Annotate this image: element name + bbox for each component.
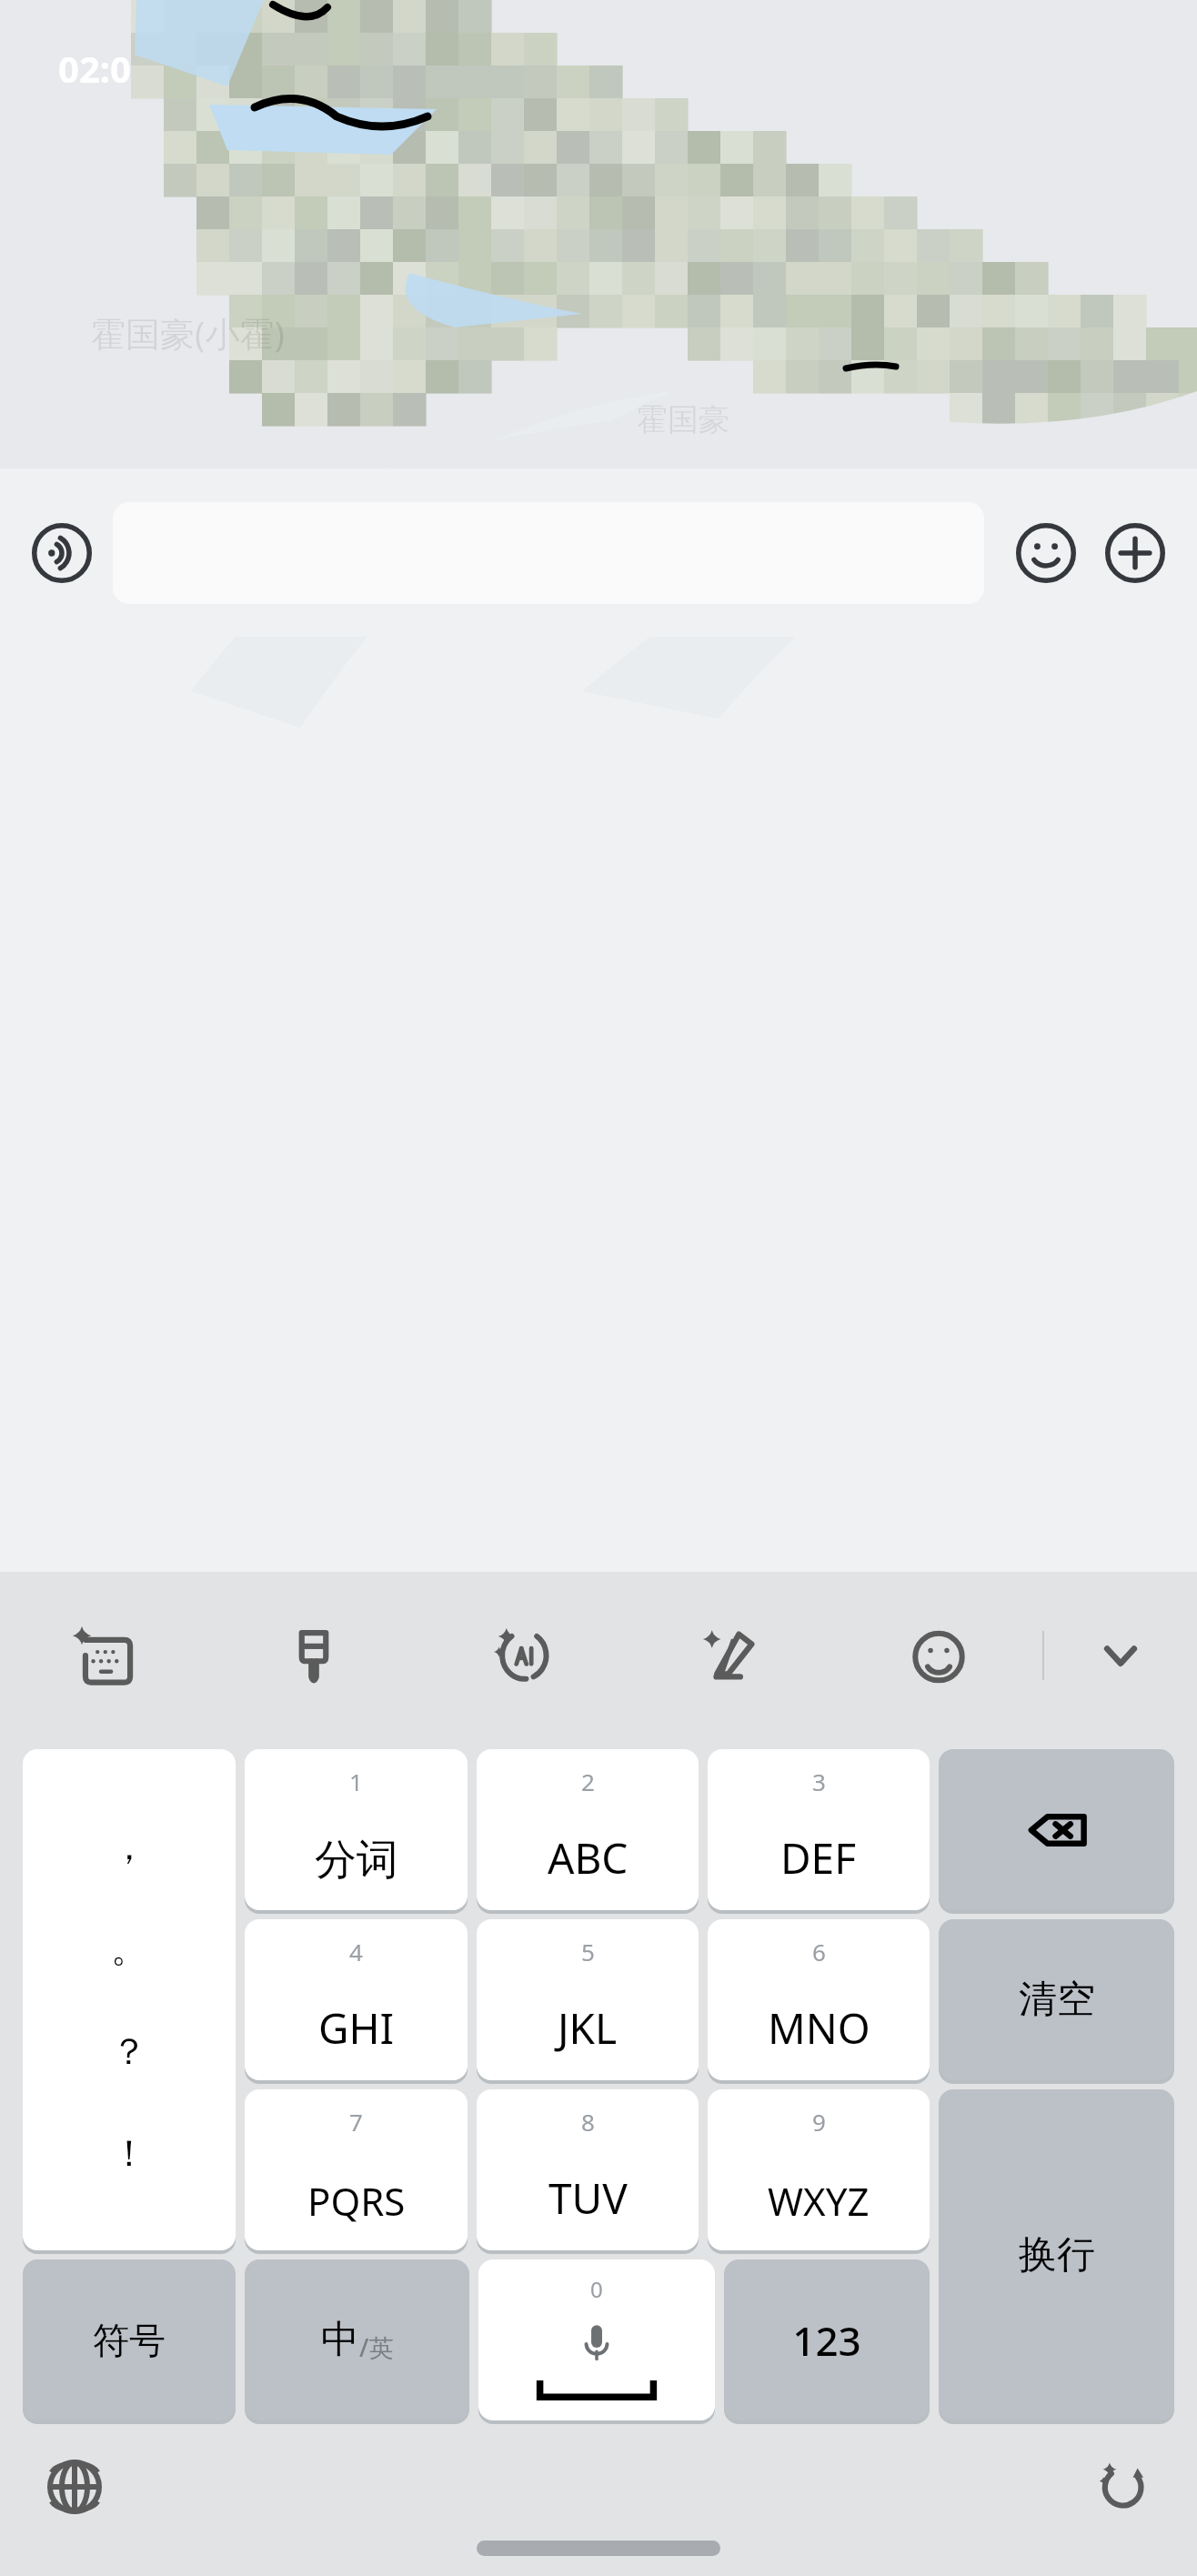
staticText: 清空 (1019, 1976, 1095, 2024)
staticText: 2 (581, 1766, 595, 1797)
button[interactable]: 123 (724, 2259, 930, 2420)
button[interactable]: Voice input (20, 511, 104, 595)
button[interactable]: 6 (708, 1919, 930, 2080)
button[interactable]: 4 (245, 1919, 468, 2080)
staticText: ， (111, 1824, 147, 1869)
staticText: 中 (321, 2316, 359, 2364)
staticText: WXYZ (768, 2175, 870, 2227)
button[interactable]: 5 (477, 1919, 699, 2080)
staticText: 123 (792, 2313, 861, 2368)
staticText: 3 (812, 1766, 826, 1797)
staticText: TUV (548, 2169, 628, 2227)
button[interactable]: 清空 (939, 1919, 1174, 2080)
staticText: 。 (111, 1926, 147, 1971)
button[interactable]: AI (417, 1572, 626, 1739)
button[interactable]: Handwriting (626, 1572, 834, 1739)
staticText: DEF (780, 1829, 857, 1887)
staticText: PQRS (307, 2175, 406, 2227)
button[interactable]: 0 (478, 2259, 715, 2420)
button[interactable]: 1 (245, 1749, 468, 1910)
button[interactable]: Emoji (834, 1572, 1042, 1739)
button[interactable]: 2 (477, 1749, 699, 1910)
button[interactable]: 中 (245, 2259, 469, 2420)
button[interactable]: Theme brush (209, 1572, 417, 1739)
button[interactable]: 9 (708, 2089, 930, 2250)
staticText: 9 (812, 2106, 826, 2138)
button[interactable]: Switch language (31, 2443, 118, 2531)
button[interactable]: AI rewrite (1079, 2443, 1166, 2531)
button[interactable]: More (1093, 511, 1177, 595)
staticText: /英 (359, 2330, 394, 2364)
button[interactable]: Smart keyboard (0, 1572, 209, 1739)
staticText: 7 (349, 2106, 363, 2138)
staticText: 符号 (93, 2318, 166, 2363)
button[interactable]: 8 (477, 2089, 699, 2250)
staticText: ！ (111, 2130, 147, 2176)
staticText: 换行 (1019, 2231, 1095, 2279)
button[interactable]: ， (23, 1749, 236, 2250)
staticText: ？ (111, 2028, 147, 2074)
button[interactable]: Backspace (939, 1749, 1174, 1910)
staticText: 6 (812, 1936, 826, 1967)
staticText: 分词 (315, 1834, 398, 1887)
button[interactable]: 换行 (939, 2089, 1174, 2420)
staticText: 4 (349, 1936, 363, 1967)
staticText: 1 (349, 1766, 363, 1797)
staticText: 0 (590, 2274, 603, 2304)
button[interactable]: 3 (708, 1749, 930, 1910)
staticText: ABC (548, 1829, 629, 1887)
staticText: 5 (581, 1936, 595, 1967)
staticText: 霍国豪(小霍) (91, 309, 285, 357)
staticText: MNO (768, 1999, 870, 2057)
button[interactable]: Hide keyboard (1044, 1572, 1197, 1739)
button[interactable]: Emoji (1004, 511, 1088, 595)
staticText: JKL (558, 1999, 618, 2057)
button[interactable]: 符号 (23, 2259, 236, 2420)
staticText: 霍国豪 (637, 400, 729, 439)
staticText: 02:0 (58, 44, 131, 93)
staticText: 8 (581, 2106, 595, 2138)
button[interactable]: 7 (245, 2089, 468, 2250)
staticText: GHI (318, 1999, 395, 2057)
